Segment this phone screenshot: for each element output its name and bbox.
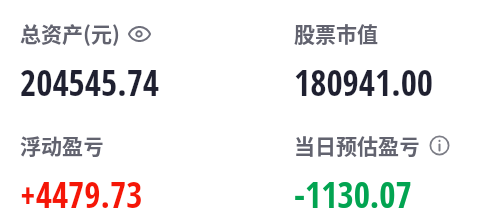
staticText: 当日预估盈亏 xyxy=(294,130,420,160)
staticText: 股票市值 xyxy=(294,18,378,48)
staticText: +4479.73 xyxy=(20,171,143,216)
button[interactable]: Toggle balance visibility xyxy=(128,25,151,41)
staticText: 总资产(元) xyxy=(20,18,120,48)
staticText: 180941.00 xyxy=(294,59,434,107)
button[interactable]: Estimated profit info xyxy=(429,135,450,156)
staticText: -1130.07 xyxy=(294,171,412,216)
staticText: 浮动盈亏 xyxy=(20,130,104,160)
staticText: 204545.74 xyxy=(20,59,160,107)
